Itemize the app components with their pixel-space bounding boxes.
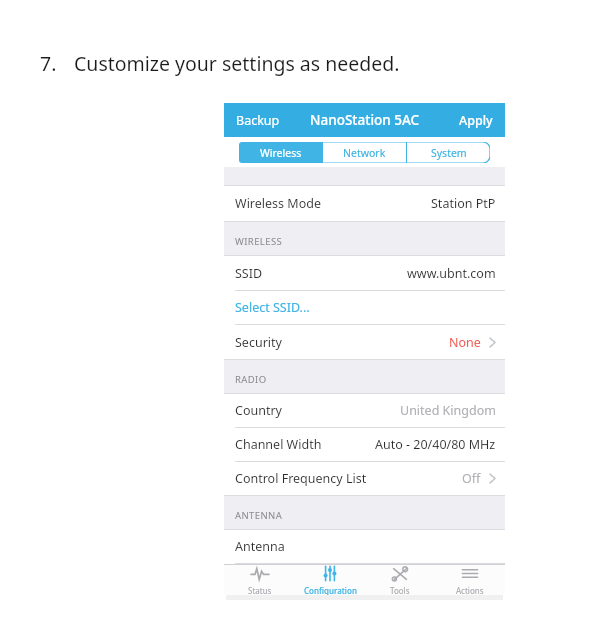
staticText: Security (235, 334, 282, 351)
button[interactable]: Select SSID... (224, 291, 505, 324)
staticText: Backup (236, 112, 280, 129)
staticText: 7. (40, 50, 57, 77)
button[interactable]: Network (323, 142, 406, 163)
staticText: www.ubnt.com (407, 265, 496, 282)
staticText: SSID (235, 265, 263, 282)
button[interactable]: Wireless (239, 142, 322, 163)
button[interactable]: Control Frequency List (224, 462, 505, 495)
staticText: United Kingdom (400, 402, 496, 419)
staticText: Actions (456, 585, 484, 595)
staticText: Apply (459, 112, 493, 129)
staticText: Tools (390, 585, 410, 595)
button[interactable]: Antenna (224, 530, 505, 563)
staticText: Auto - 20/40/80 MHz (375, 436, 496, 453)
button[interactable]: Configuration (295, 565, 365, 595)
staticText: Customize your settings as needed. (74, 50, 400, 77)
staticText: Country (235, 402, 282, 419)
staticText: Control Frequency List (235, 470, 367, 487)
staticText: RADIO (235, 373, 267, 386)
staticText: Network (343, 146, 386, 160)
staticText: None (449, 334, 481, 351)
button[interactable]: Security (224, 325, 505, 359)
button[interactable]: Tools (365, 565, 435, 595)
staticText: Configuration (304, 585, 357, 595)
staticText: Status (248, 585, 272, 595)
staticText: Antenna (235, 538, 285, 555)
button[interactable]: Actions (435, 565, 505, 595)
button[interactable]: Status (224, 565, 295, 595)
staticText: System (431, 146, 467, 160)
staticText: WIRELESS (235, 235, 283, 248)
staticText: Station PtP (431, 195, 496, 212)
button[interactable]: System (407, 142, 490, 163)
staticText: Wireless (260, 146, 302, 160)
button[interactable]: Backup (234, 108, 282, 133)
button[interactable]: Country (224, 394, 505, 427)
staticText: Select SSID... (235, 299, 310, 316)
button[interactable]: SSID (224, 256, 505, 290)
staticText: Wireless Mode (235, 195, 321, 212)
staticText: NanoStation 5AC (310, 111, 420, 129)
button[interactable]: Apply (457, 108, 495, 133)
button[interactable]: Wireless Mode (224, 186, 505, 221)
staticText: ANTENNA (235, 509, 283, 522)
staticText: Channel Width (235, 436, 322, 453)
button[interactable]: Channel Width (224, 428, 505, 461)
staticText: Off (462, 470, 481, 487)
